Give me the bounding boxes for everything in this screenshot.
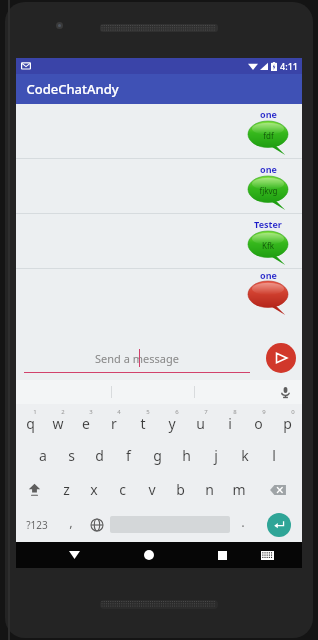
staticText: 2 bbox=[61, 408, 65, 416]
staticText: h bbox=[182, 446, 191, 465]
staticText: a bbox=[39, 446, 47, 465]
staticText: d bbox=[95, 446, 104, 465]
staticText: v bbox=[148, 480, 156, 499]
staticText: fdf bbox=[263, 130, 274, 141]
button[interactable]: v bbox=[137, 472, 166, 507]
button[interactable]: Recents bbox=[202, 542, 243, 568]
staticText: 9 bbox=[262, 408, 266, 416]
staticText: b bbox=[176, 480, 185, 499]
staticText: 7 bbox=[204, 408, 208, 416]
staticText: CodeChatAndy bbox=[26, 80, 119, 98]
button[interactable]: 9 bbox=[244, 404, 273, 438]
button[interactable]: c bbox=[108, 472, 137, 507]
staticText: n bbox=[205, 480, 214, 499]
button[interactable]: 1 bbox=[16, 404, 44, 438]
staticText: t bbox=[140, 414, 146, 433]
staticText: o bbox=[254, 414, 263, 433]
staticText: 1 bbox=[33, 408, 37, 416]
staticText: s bbox=[68, 446, 75, 465]
button[interactable]: Change language bbox=[84, 507, 110, 542]
button[interactable]: Backspace bbox=[253, 472, 302, 507]
staticText: 4:11 bbox=[280, 60, 298, 72]
button[interactable]: k bbox=[230, 438, 259, 472]
staticText: f bbox=[126, 446, 131, 465]
button[interactable]: h bbox=[172, 438, 201, 472]
button[interactable]: 4 bbox=[100, 404, 128, 438]
staticText: one bbox=[260, 108, 277, 120]
button[interactable]: Voice input bbox=[276, 383, 294, 401]
staticText: Send a message bbox=[95, 351, 179, 366]
staticText: i bbox=[228, 414, 232, 433]
button[interactable]: Send a message bbox=[24, 343, 250, 373]
button[interactable]: x bbox=[80, 472, 108, 507]
staticText: x bbox=[90, 480, 98, 499]
staticText: 8 bbox=[233, 408, 237, 416]
button[interactable]: Send message bbox=[266, 343, 296, 373]
button[interactable]: f bbox=[114, 438, 143, 472]
button[interactable]: one bbox=[16, 159, 302, 213]
button[interactable]: Home bbox=[128, 542, 169, 568]
staticText: l bbox=[272, 446, 276, 465]
staticText: one bbox=[260, 163, 277, 175]
staticText: q bbox=[26, 414, 35, 433]
staticText: . bbox=[241, 513, 245, 531]
button[interactable]: z bbox=[52, 472, 80, 507]
staticText: 4 bbox=[117, 408, 121, 416]
button[interactable]: ?123 bbox=[16, 507, 58, 542]
button[interactable]: l bbox=[259, 438, 288, 472]
staticText: z bbox=[63, 480, 70, 499]
button[interactable]: Enter bbox=[267, 513, 291, 537]
staticText: g bbox=[153, 446, 162, 465]
button[interactable]: 5 bbox=[128, 404, 157, 438]
button[interactable]: , bbox=[58, 507, 84, 542]
button[interactable]: one bbox=[16, 104, 302, 158]
staticText: 3 bbox=[89, 408, 93, 416]
staticText: c bbox=[119, 480, 126, 499]
staticText: fjkvg bbox=[259, 185, 278, 196]
button[interactable]: . bbox=[230, 507, 256, 542]
button[interactable]: a bbox=[29, 438, 57, 472]
staticText: ?123 bbox=[26, 518, 48, 532]
button[interactable]: n bbox=[195, 472, 224, 507]
button[interactable]: 3 bbox=[72, 404, 100, 438]
staticText: k bbox=[241, 446, 249, 465]
staticText: Tester bbox=[254, 218, 282, 230]
button[interactable]: 2 bbox=[44, 404, 72, 438]
button[interactable]: j bbox=[201, 438, 230, 472]
staticText: u bbox=[196, 414, 205, 433]
staticText: 5 bbox=[146, 408, 150, 416]
button[interactable]: Tester bbox=[16, 214, 302, 268]
button[interactable]: g bbox=[143, 438, 172, 472]
button[interactable]: 7 bbox=[186, 404, 215, 438]
button[interactable]: Shift bbox=[16, 472, 52, 507]
button[interactable]: 6 bbox=[157, 404, 186, 438]
button[interactable]: s bbox=[57, 438, 85, 472]
button[interactable]: CodeChatAndy bbox=[16, 74, 302, 104]
staticText: Kfk bbox=[262, 240, 274, 251]
staticText: j bbox=[214, 446, 218, 465]
staticText: 0 bbox=[291, 408, 295, 416]
button[interactable]: Switch keyboard bbox=[247, 542, 288, 568]
staticText: w bbox=[52, 414, 64, 433]
button[interactable]: 8 bbox=[215, 404, 244, 438]
staticText: , bbox=[69, 513, 73, 531]
staticText: p bbox=[283, 414, 292, 433]
button[interactable]: 0 bbox=[273, 404, 302, 438]
staticText: r bbox=[111, 414, 117, 433]
staticText: m bbox=[232, 480, 246, 499]
button[interactable]: b bbox=[166, 472, 195, 507]
staticText: 6 bbox=[175, 408, 179, 416]
button[interactable]: Back bbox=[54, 542, 95, 568]
staticText: e bbox=[82, 414, 90, 433]
staticText: one bbox=[260, 269, 277, 281]
staticText: y bbox=[168, 414, 176, 433]
button[interactable]: d bbox=[85, 438, 114, 472]
button[interactable]: m bbox=[224, 472, 253, 507]
